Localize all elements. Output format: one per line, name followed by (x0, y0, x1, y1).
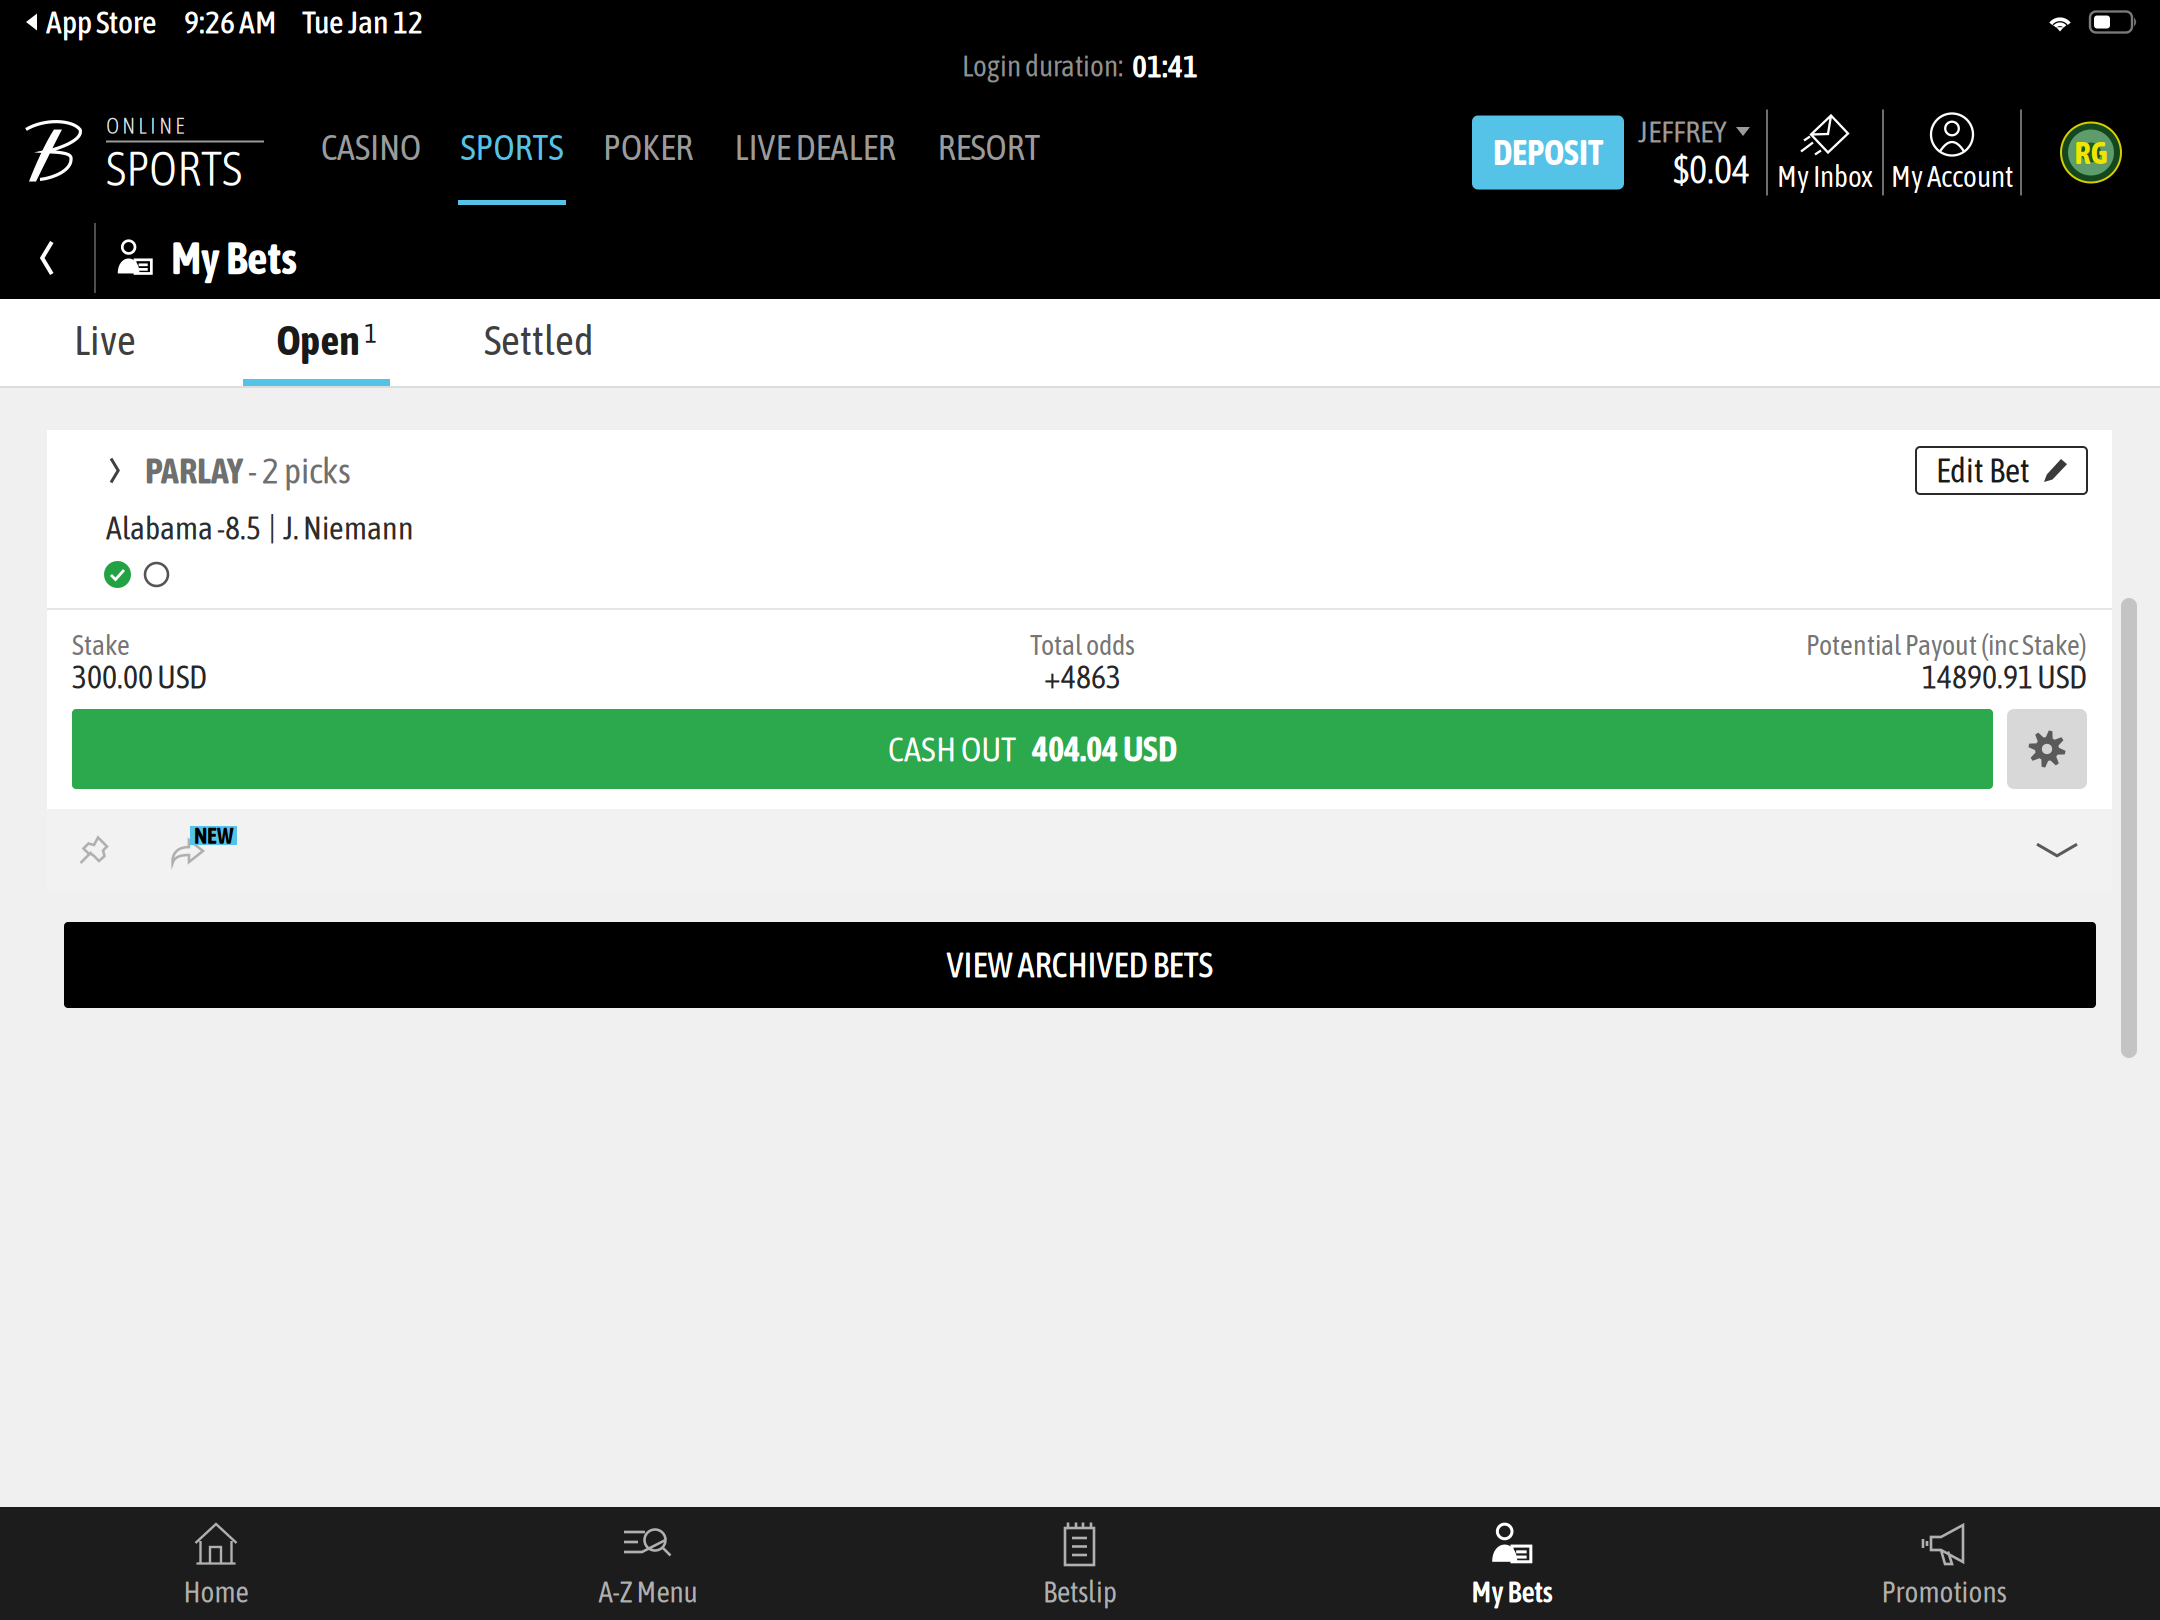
staticText: SPORTS (460, 126, 563, 168)
staticText: App Store (46, 4, 157, 40)
staticText: 404.04 USD (1032, 729, 1177, 769)
staticText: Promotions (1881, 1575, 2006, 1609)
staticText: Stake (72, 629, 130, 661)
button[interactable]: Home (0, 1507, 432, 1620)
staticText: Edit Bet (1936, 451, 2030, 490)
button[interactable]: JEFFREY (1638, 111, 1750, 193)
staticText: A-Z Menu (598, 1575, 697, 1609)
staticText: 300.00 USD (72, 659, 207, 695)
staticText: My Account (1891, 160, 2013, 193)
button[interactable]: DEPOSIT (1472, 115, 1624, 189)
staticText: Live (74, 316, 136, 364)
staticText: NEW (194, 822, 233, 848)
staticText: 1 (364, 318, 377, 348)
staticText: My Bets (1471, 1575, 1552, 1609)
button[interactable]: My Bets (1296, 1507, 1728, 1620)
staticText: Potential Payout (inc Stake) (1806, 629, 2087, 661)
button[interactable]: Expand bet (2024, 817, 2090, 883)
button[interactable]: CASH OUT (72, 709, 1993, 789)
staticText: Settled (484, 316, 594, 364)
button[interactable]: Betslip (864, 1507, 1296, 1620)
staticText: - 2 picks (243, 450, 351, 491)
button[interactable]: Cash out options (2007, 709, 2087, 789)
button[interactable]: Pin bet (61, 817, 127, 883)
button[interactable]: SPORTS (441, 88, 583, 217)
button[interactable]: Responsible Gaming (2022, 100, 2160, 204)
staticText: Alabama -8.5 | J. Niemann (106, 510, 414, 546)
staticText: Home (183, 1575, 248, 1609)
button[interactable]: POKER (583, 88, 713, 217)
staticText: Login duration: (962, 49, 1123, 83)
button[interactable]: CASINO (301, 88, 441, 217)
staticText: RG (2074, 134, 2107, 171)
staticText: Open (276, 316, 359, 364)
staticText: VIEW ARCHIVED BETS (946, 945, 1213, 985)
button[interactable]: My Inbox (1768, 100, 1882, 204)
staticText: 9:26 AM (184, 4, 276, 40)
button[interactable]: Edit Bet (1916, 447, 2087, 494)
staticText: Betslip (1043, 1575, 1117, 1609)
button[interactable]: Live (0, 299, 210, 386)
staticText: RESORT (937, 126, 1040, 168)
button[interactable]: Promotions (1728, 1507, 2160, 1620)
button[interactable]: LIVE DEALER (713, 88, 917, 217)
button[interactable]: RESORT (917, 88, 1061, 217)
staticText: CASINO (321, 126, 421, 168)
button[interactable]: Settled (444, 299, 634, 386)
button[interactable]: Back (0, 217, 94, 299)
staticText: My Bets (171, 232, 297, 284)
button[interactable]: My Account (1884, 100, 2020, 204)
staticText: SPORTS (106, 141, 242, 196)
staticText: PARLAY (145, 450, 243, 491)
button[interactable]: Open (210, 299, 444, 386)
staticText: O N L I N E (106, 112, 185, 138)
staticText: POKER (603, 126, 693, 168)
staticText: CASH OUT (888, 729, 1016, 769)
staticText: $0.04 (1673, 147, 1750, 192)
staticText: My Inbox (1777, 160, 1873, 193)
button[interactable]: VIEW ARCHIVED BETS (64, 922, 2096, 1008)
staticText: LIVE DEALER (734, 126, 895, 168)
button[interactable]: Share bet (155, 817, 221, 883)
staticText: 01:41 (1132, 48, 1198, 84)
staticText: 14890.91 USD (1922, 659, 2087, 695)
staticText: +4863 (1044, 659, 1121, 695)
button[interactable]: A-Z Menu (432, 1507, 864, 1620)
staticText: Total odds (1030, 629, 1135, 661)
staticText: DEPOSIT (1493, 133, 1603, 172)
staticText: Tue Jan 12 (302, 4, 423, 40)
staticText: JEFFREY (1638, 114, 1727, 149)
